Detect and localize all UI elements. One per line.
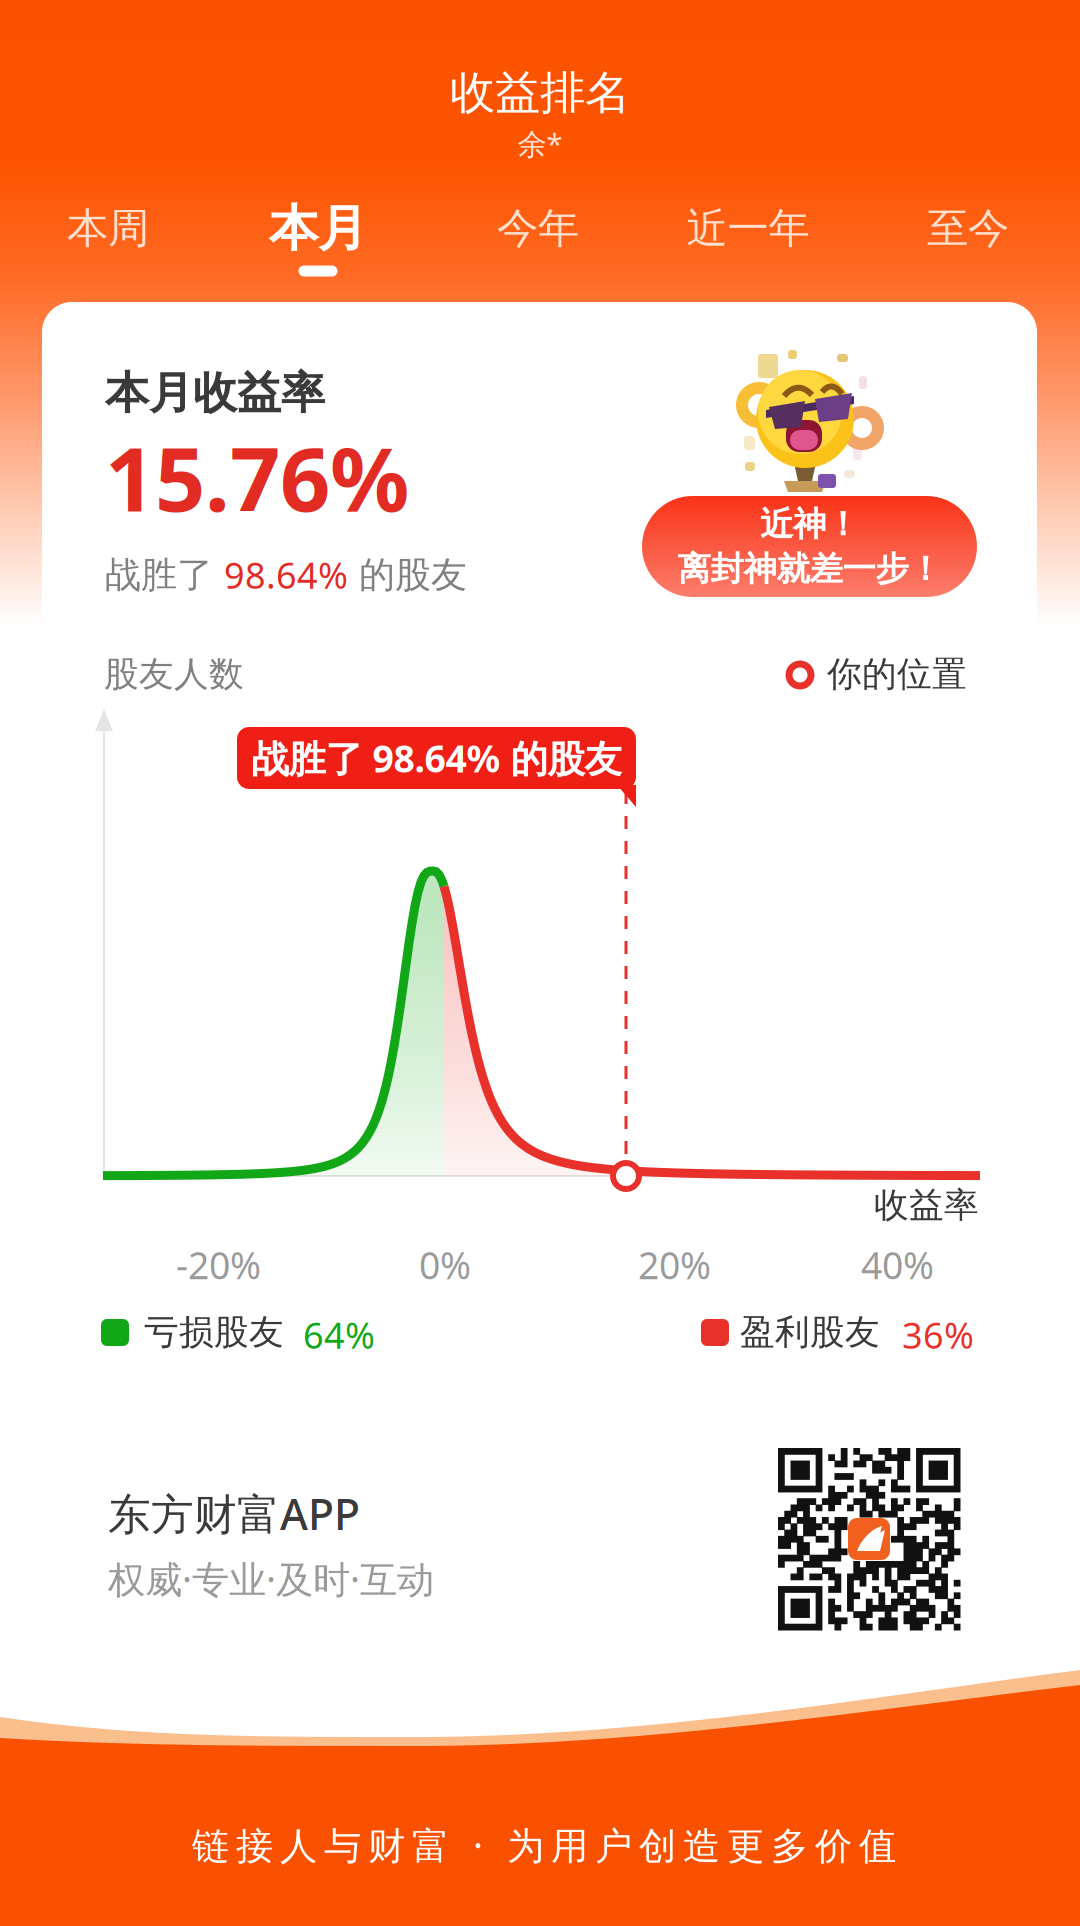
button[interactable]: 至今 <box>863 194 1073 284</box>
staticText: 本月收益率 <box>105 366 325 420</box>
staticText: 战胜了 <box>105 553 224 597</box>
staticText: 余* <box>517 124 562 163</box>
staticText: 15.76% <box>105 419 409 536</box>
staticText: 收益排名 <box>450 65 630 121</box>
button[interactable]: 近一年 <box>643 194 853 284</box>
staticText: 的股友 <box>348 553 467 597</box>
staticText: 近神！ <box>760 504 859 544</box>
staticText: 今年 <box>497 203 579 254</box>
staticText: 离封神就差一步！ <box>677 548 941 589</box>
staticText: -20% <box>176 1240 261 1290</box>
staticText: 64% <box>303 1311 375 1359</box>
staticText: 本月 <box>269 198 367 259</box>
staticText: 至今 <box>927 203 1009 254</box>
button[interactable]: 本月 <box>213 194 423 284</box>
staticText: 权威·专业·及时·互动 <box>108 1554 434 1604</box>
staticText: 东方财富APP <box>108 1485 360 1542</box>
staticText: 98.64% <box>224 551 348 599</box>
staticText: 近一年 <box>686 203 809 254</box>
staticText: 亏损股友 <box>144 1311 284 1354</box>
button[interactable]: 本周 <box>3 194 213 284</box>
staticText: 20% <box>638 1240 711 1290</box>
staticText: 0% <box>419 1240 471 1290</box>
staticText: 战胜了 98.64% 的股友 <box>251 733 621 783</box>
staticText: 股友人数 <box>104 653 244 696</box>
staticText: 链接人与财富 · 为用户创造更多价值 <box>192 1820 896 1870</box>
staticText: 本周 <box>67 203 149 254</box>
staticText: 盈利股友 <box>740 1311 880 1354</box>
staticText: 36% <box>902 1311 974 1359</box>
staticText: 你的位置 <box>827 653 967 696</box>
staticText: 40% <box>861 1240 934 1290</box>
button[interactable]: 今年 <box>433 194 643 284</box>
staticText: 收益率 <box>874 1184 979 1227</box>
